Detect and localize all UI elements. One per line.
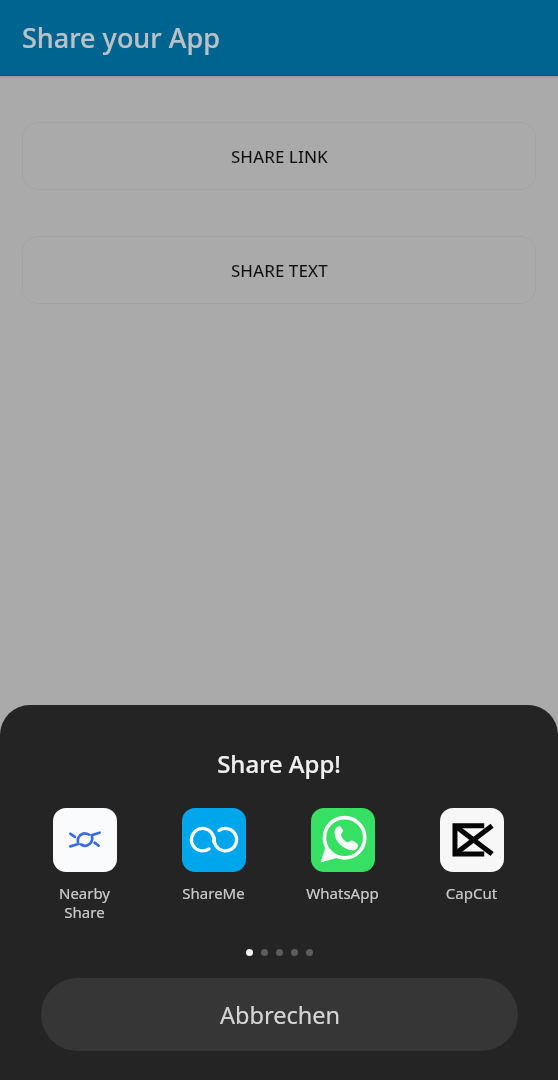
- staticText: Nearby Share: [20, 883, 149, 922]
- button[interactable]: Nearby Share: [20, 808, 149, 922]
- button[interactable]: ShareMe: [149, 808, 278, 903]
- staticText: Share your App: [22, 19, 220, 56]
- button[interactable]: SHARE LINK: [22, 122, 536, 190]
- other: ShareMe: [182, 808, 246, 872]
- staticText: SHARE TEXT: [231, 259, 328, 282]
- button[interactable]: SHARE TEXT: [22, 236, 536, 304]
- button[interactable]: Share your App: [0, 0, 558, 76]
- other: Nearby Share: [53, 808, 117, 872]
- staticText: SHARE LINK: [231, 145, 328, 168]
- staticText: WhatsApp: [278, 883, 407, 903]
- staticText: ShareMe: [149, 883, 278, 903]
- staticText: Share App!: [0, 747, 558, 780]
- button[interactable]: Abbrechen: [41, 978, 518, 1051]
- button[interactable]: WhatsApp: [278, 808, 407, 903]
- staticText: Abbrechen: [220, 999, 340, 1031]
- staticText: CapCut: [407, 883, 536, 903]
- other: CapCut: [440, 808, 504, 872]
- button[interactable]: CapCut: [407, 808, 536, 903]
- other: WhatsApp: [311, 808, 375, 872]
